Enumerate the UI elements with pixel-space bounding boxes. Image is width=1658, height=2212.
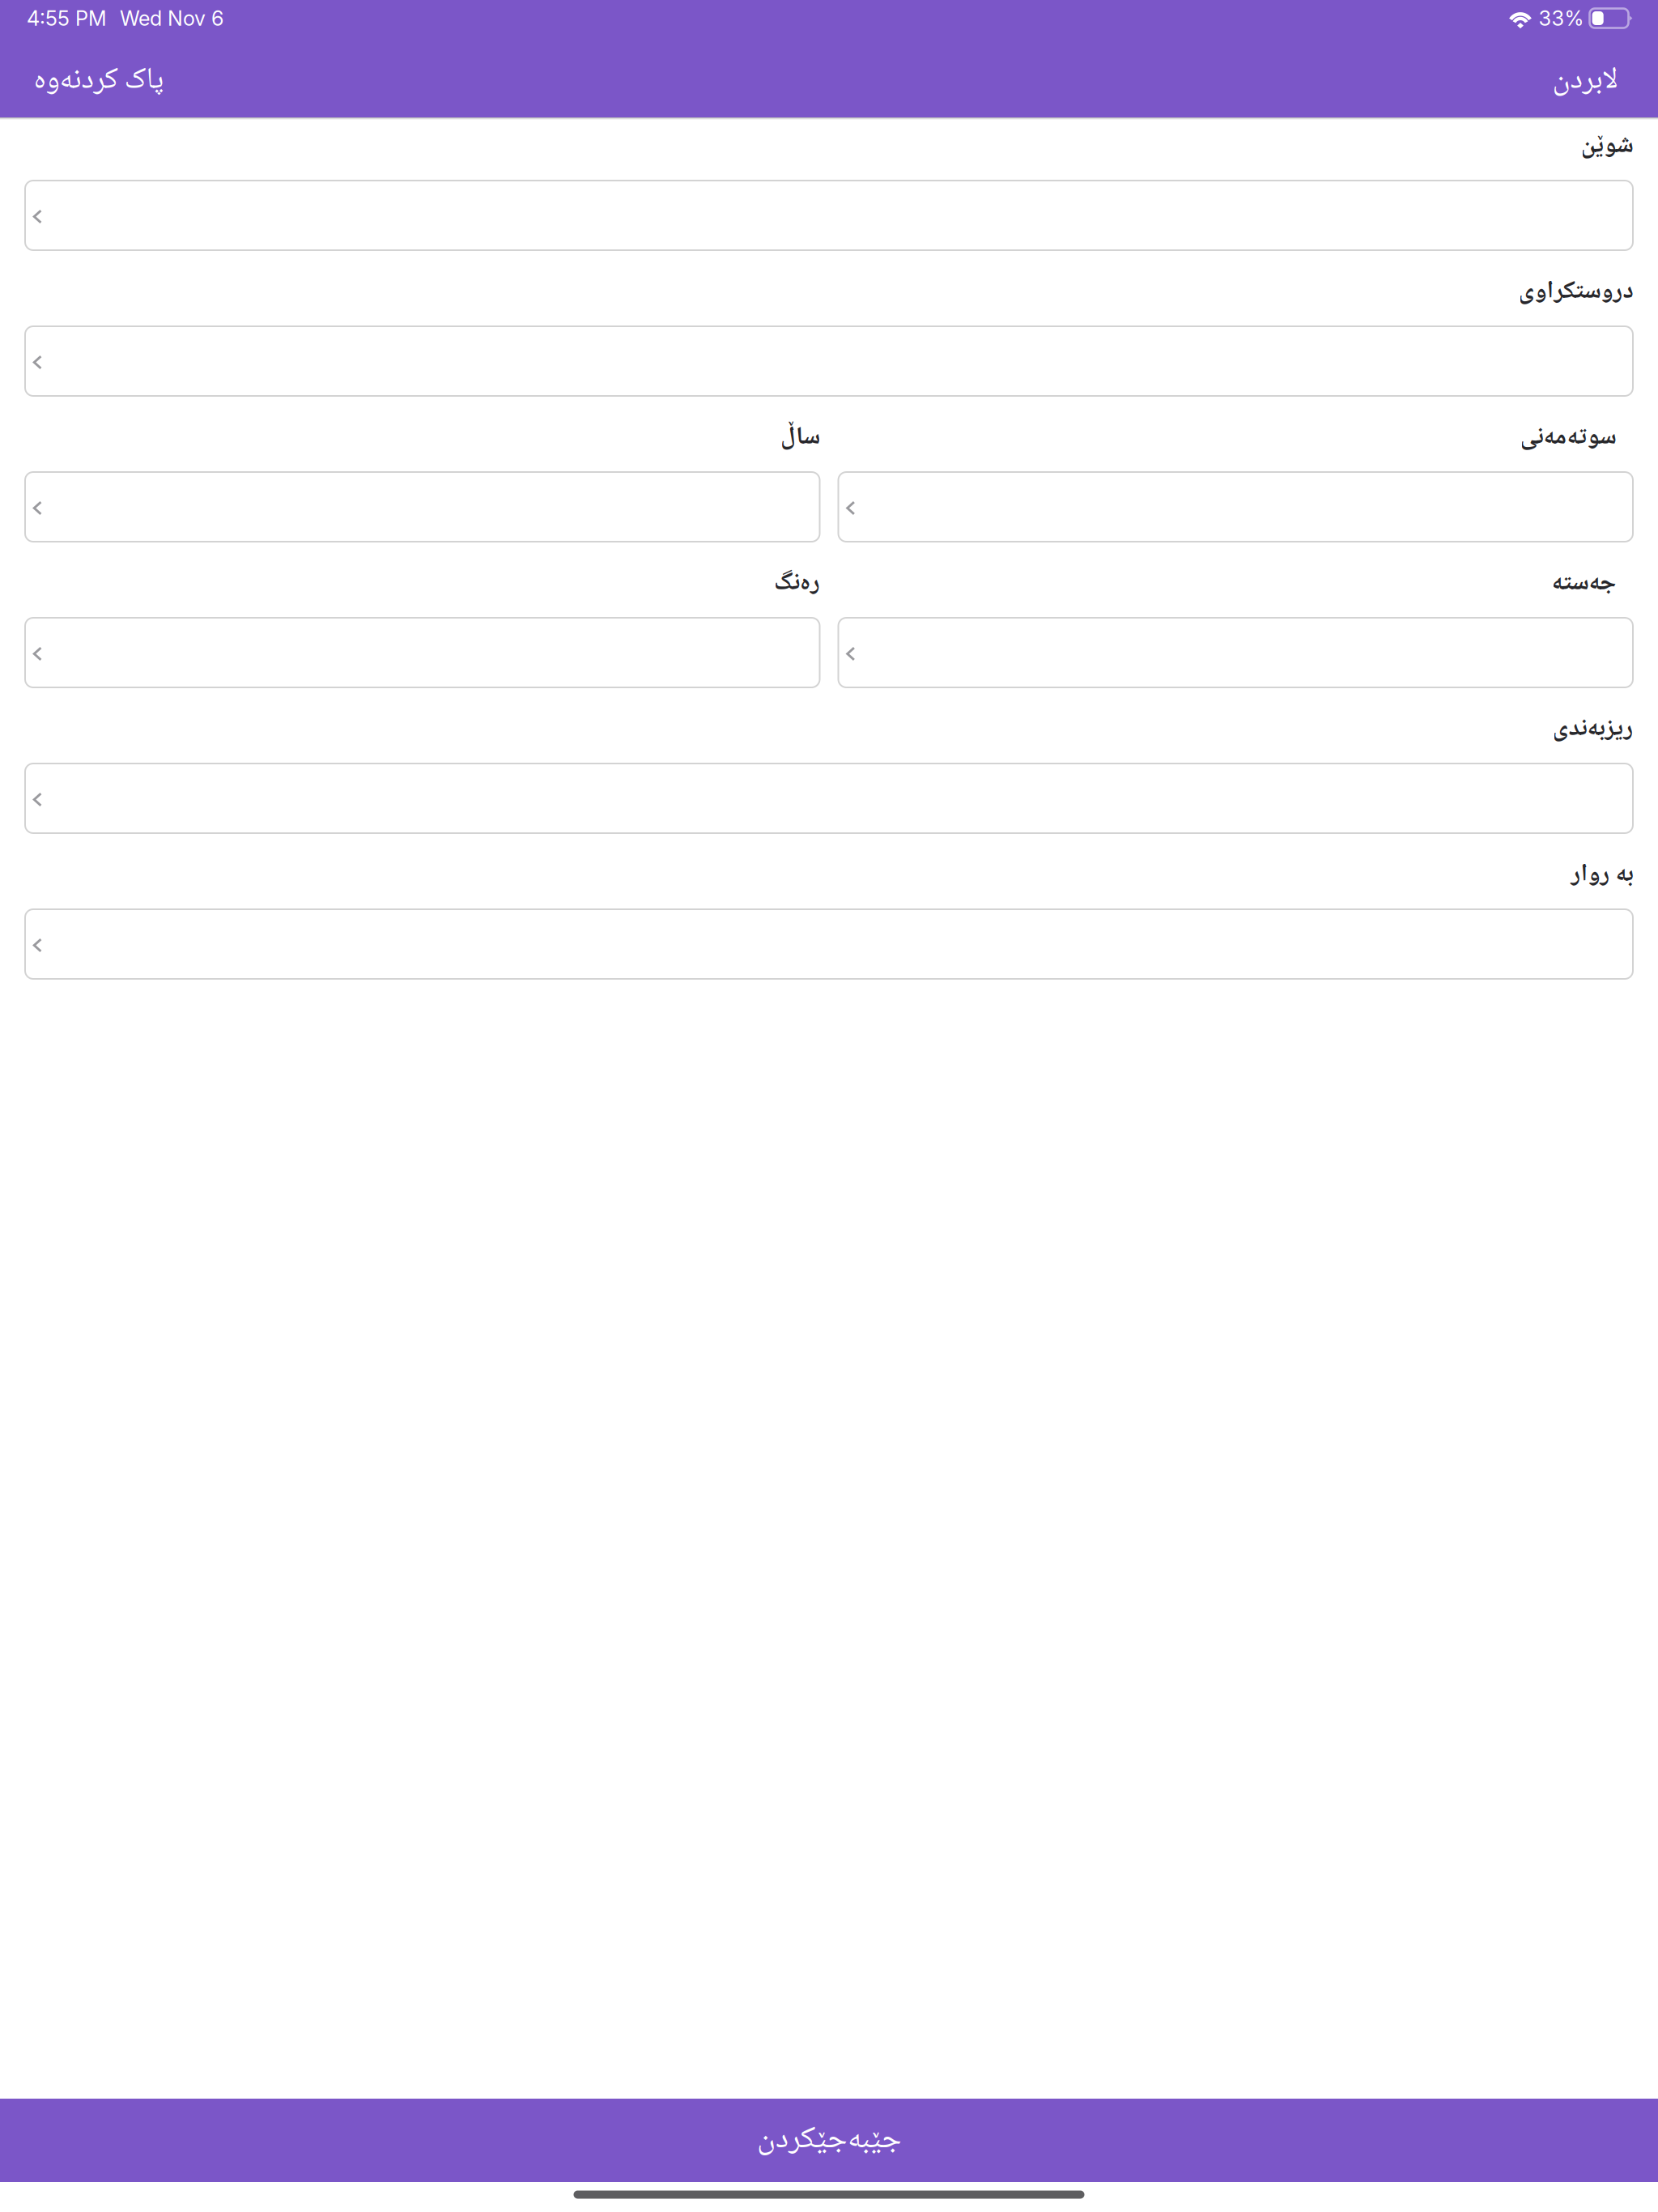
staticText: ساڵ [780,417,820,459]
staticText: Wed Nov 6 [120,6,223,31]
staticText: شوێن [1580,125,1633,168]
staticText: ریزبەندی [1552,708,1633,751]
staticText: 33% [1539,6,1584,31]
button[interactable]: شوێن [25,181,1633,250]
staticText: جەستە [1551,563,1616,605]
staticText: لابردن [1552,56,1618,107]
button[interactable]: سوتەمەنی [838,472,1633,542]
button[interactable]: رەنگ [25,618,820,687]
button[interactable]: دروستکراوی [25,326,1633,396]
button[interactable]: به روار [25,909,1633,979]
button[interactable]: جێبەجێکردن [0,2099,1658,2182]
button[interactable]: جەستە [838,618,1633,687]
staticText: دروستکراوی [1518,271,1633,314]
button[interactable]: ریزبەندی [25,764,1633,833]
staticText: پاک کردنەوە [33,56,164,107]
staticText: رەنگ [774,563,820,605]
button[interactable]: پاک کردنەوە [22,48,175,119]
button[interactable]: لابردن [1541,48,1629,119]
button[interactable]: ساڵ [25,472,820,542]
staticText: به روار [1571,854,1633,896]
staticText: جێبەجێکردن [757,2114,901,2167]
staticText: سوتەمەنی [1520,417,1616,459]
staticText: 4:55 PM [27,6,107,31]
